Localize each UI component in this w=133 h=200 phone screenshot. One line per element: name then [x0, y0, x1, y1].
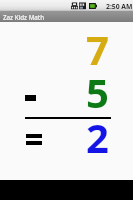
staticText: 2	[86, 110, 109, 154]
staticText: 5	[86, 65, 109, 109]
button[interactable]: Answer: 2	[18, 122, 115, 166]
button[interactable]: Zaz Kidz Math	[0, 11, 133, 22]
button[interactable]: 5	[18, 68, 115, 112]
staticText: Zaz Kidz Math	[3, 13, 45, 21]
button[interactable]: 7	[18, 24, 115, 68]
staticText: 7	[86, 22, 109, 66]
staticText: 2:50 AM	[106, 2, 133, 11]
